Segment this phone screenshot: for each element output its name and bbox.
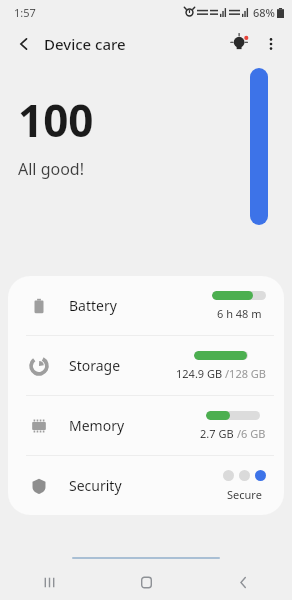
staticText: 68% bbox=[253, 5, 275, 20]
button[interactable]: Security bbox=[8, 456, 284, 515]
staticText: Security bbox=[69, 476, 122, 495]
button[interactable]: Back bbox=[8, 28, 40, 60]
button[interactable]: Tips bbox=[224, 28, 256, 60]
button[interactable]: Back bbox=[195, 564, 292, 600]
staticText: /6 GB bbox=[237, 426, 266, 441]
staticText: 100 bbox=[18, 90, 94, 150]
button[interactable]: Home bbox=[98, 564, 195, 600]
staticText: /128 GB bbox=[225, 366, 266, 381]
button[interactable]: Battery bbox=[8, 276, 284, 335]
button[interactable]: Storage bbox=[8, 336, 284, 395]
staticText: Device care bbox=[44, 34, 126, 54]
staticText: Storage bbox=[69, 356, 121, 375]
staticText: 6 h 48 m bbox=[217, 306, 262, 321]
button[interactable]: More options bbox=[256, 29, 286, 59]
staticText: All good! bbox=[18, 158, 84, 180]
staticText: 1:57 bbox=[14, 5, 36, 20]
button[interactable]: Memory bbox=[8, 396, 284, 455]
staticText: Battery bbox=[69, 296, 117, 315]
staticText: Memory bbox=[69, 416, 125, 435]
staticText: Secure bbox=[227, 487, 262, 502]
staticText: 2.7 GB bbox=[200, 426, 237, 441]
button[interactable]: Recents bbox=[0, 564, 98, 600]
staticText: 124.9 GB bbox=[176, 366, 225, 381]
